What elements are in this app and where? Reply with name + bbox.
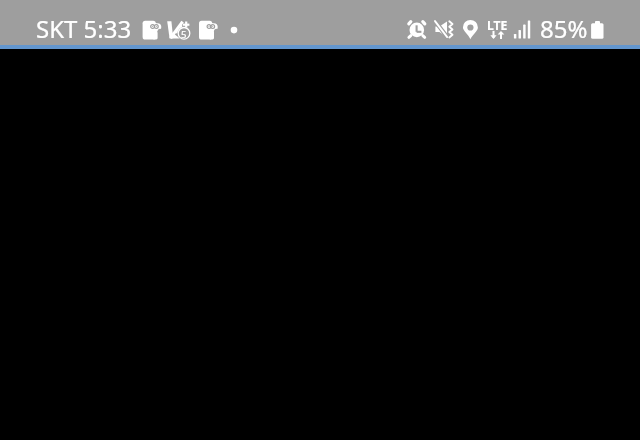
button[interactable]: Message notification	[197, 16, 223, 44]
button[interactable]: Message notification	[140, 16, 166, 44]
button[interactable]: Alarm set	[405, 16, 429, 44]
button[interactable]: LTE data	[484, 16, 508, 44]
button[interactable]: Battery 85 percent	[537, 4, 607, 45]
button[interactable]: Location in use	[460, 16, 482, 44]
staticText: 85%	[540, 12, 588, 45]
button[interactable]: Sound off, vibrate	[431, 16, 457, 44]
button[interactable]: Signal strength	[511, 16, 533, 44]
staticText: 5	[181, 28, 187, 41]
staticText: SKT 5:33	[36, 12, 132, 45]
button[interactable]: Notification	[226, 16, 242, 44]
button[interactable]: 5 more notifications	[166, 16, 194, 44]
staticText: LTE	[487, 17, 508, 33]
button[interactable]: Carrier and clock, SKT 5:33	[34, 4, 138, 45]
